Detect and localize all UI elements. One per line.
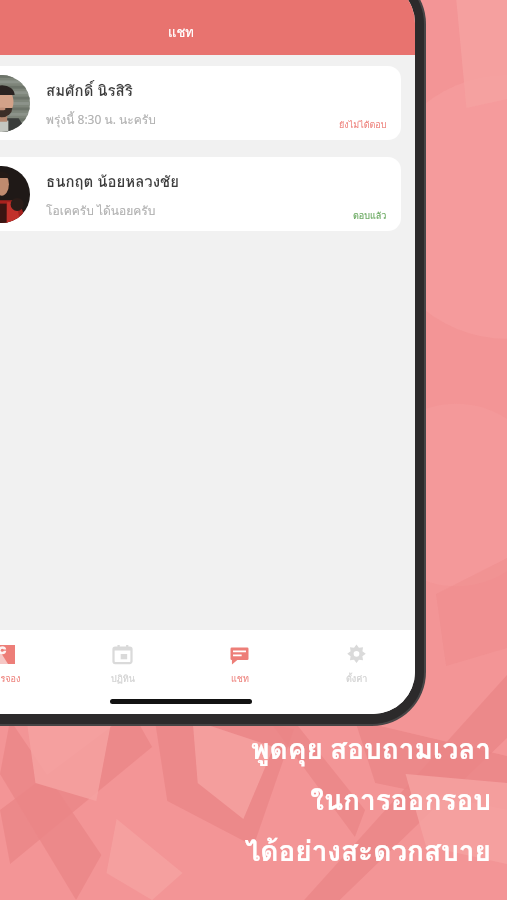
staticText: แชท (168, 22, 194, 43)
staticText: ในการออกรอบ (310, 778, 491, 823)
staticText: สมศักดิ์ นิรสิริ (46, 79, 133, 103)
staticText: ธนกฤต น้อยหลวงชัย (46, 170, 180, 194)
staticText: ตอบแล้ว (353, 209, 387, 223)
staticText: พูดคุย สอบถามเวลา (251, 727, 491, 772)
button[interactable]: การจอง (0, 639, 64, 689)
button[interactable]: ธนกฤต น้อยหลวงชัย (0, 157, 401, 231)
staticText: แชท (231, 672, 249, 686)
staticText: ปฏิทิน (111, 672, 135, 686)
staticText: โอเคครับ ได้นอยครับ (46, 201, 156, 220)
staticText: ได้อย่างสะดวกสบาย (244, 829, 491, 874)
staticText: ยังไม่ได้ตอบ (339, 118, 387, 132)
staticText: พรุ่งนี้ 8:30 น. นะครับ (46, 110, 156, 129)
button[interactable]: แชท (181, 639, 298, 689)
button[interactable]: สมศักดิ์ นิรสิริ (0, 66, 401, 140)
staticText: ตั้งค่า (346, 672, 368, 686)
staticText: การจอง (0, 672, 21, 686)
button[interactable]: ตั้งค่า (298, 639, 415, 689)
button[interactable]: ปฏิทิน (64, 639, 181, 689)
